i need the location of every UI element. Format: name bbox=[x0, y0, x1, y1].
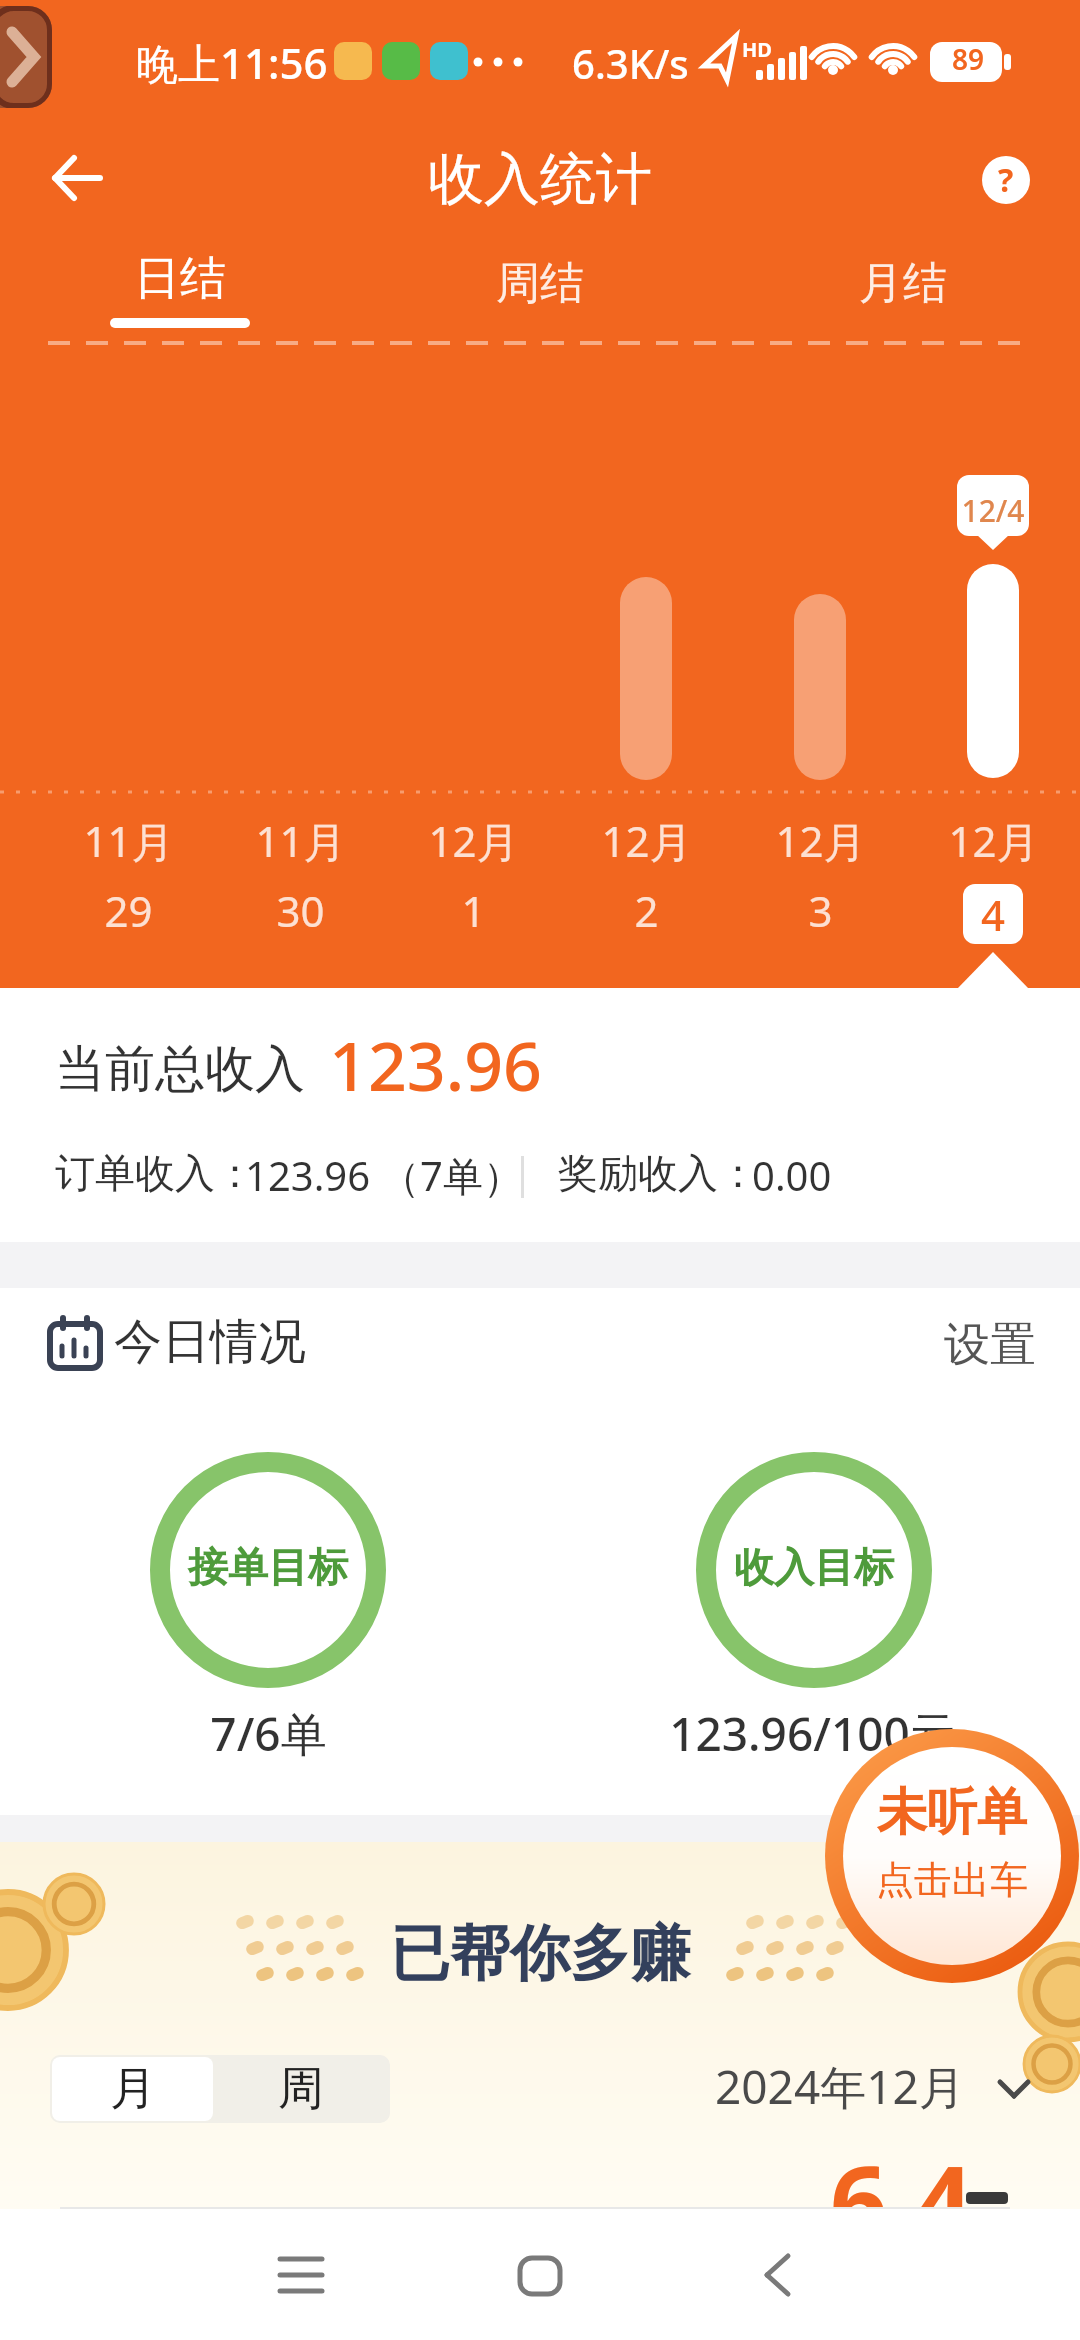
staticText: 12月 bbox=[601, 812, 692, 869]
staticText: 今日情况 bbox=[114, 1312, 306, 1372]
button[interactable] bbox=[736, 2240, 820, 2310]
button[interactable]: 设置 bbox=[0, 0, 92, 58]
button[interactable]: 月 bbox=[52, 2057, 213, 2121]
staticText: 订单收入： bbox=[55, 1148, 255, 1198]
staticText: 月结 bbox=[859, 256, 947, 311]
staticText: 12月 bbox=[948, 812, 1039, 869]
staticText: 0.00 bbox=[752, 1148, 832, 1202]
staticText: 123.96 bbox=[329, 1018, 542, 1111]
button[interactable]: 日结 bbox=[110, 232, 250, 328]
staticText: 晚上11:56 bbox=[136, 34, 328, 91]
staticText: 4 bbox=[981, 886, 1006, 943]
staticText: 1 bbox=[461, 882, 486, 939]
staticText: 3 bbox=[808, 882, 833, 939]
staticText: 12月 bbox=[775, 812, 866, 869]
button[interactable]: 2024年12月 bbox=[710, 2050, 1040, 2126]
staticText: 29 bbox=[104, 882, 153, 939]
staticText: 2024年12月 bbox=[715, 2055, 965, 2118]
staticText: 已帮你多赚 bbox=[390, 1916, 690, 1992]
staticText: 月 bbox=[110, 2060, 156, 2118]
staticText: 收入统计 bbox=[428, 144, 652, 215]
staticText: 11月 bbox=[83, 812, 174, 869]
staticText: 89 bbox=[952, 40, 985, 78]
button[interactable]: ? bbox=[982, 156, 1030, 204]
staticText: 30 bbox=[276, 882, 325, 939]
staticText: 点击出车 bbox=[876, 1856, 1028, 1904]
staticText: 日结 bbox=[134, 250, 226, 308]
staticText: （7单） bbox=[380, 1148, 523, 1203]
staticText: 奖励收入： bbox=[558, 1148, 758, 1198]
staticText: 当前总收入 bbox=[55, 1038, 305, 1101]
staticText: 123.96/100元 bbox=[669, 1702, 956, 1765]
staticText: 7/6单 bbox=[210, 1702, 327, 1765]
button[interactable]: 未听单 bbox=[825, 1729, 1079, 1983]
button[interactable] bbox=[498, 2240, 582, 2310]
staticText: 周结 bbox=[496, 256, 584, 311]
staticText: 接单目标 bbox=[188, 1542, 348, 1592]
button[interactable]: 周结 bbox=[460, 250, 620, 314]
button[interactable]: 4 bbox=[963, 884, 1023, 944]
staticText: 123.96 bbox=[245, 1148, 371, 1202]
staticText: ? bbox=[998, 158, 1014, 202]
staticText: 12月 bbox=[428, 812, 519, 869]
button[interactable]: 周 bbox=[218, 2057, 383, 2121]
staticText: 12/4 bbox=[961, 490, 1025, 531]
staticText: 周 bbox=[278, 2060, 324, 2118]
staticText: 6.3K/s bbox=[572, 36, 689, 90]
button[interactable] bbox=[260, 2240, 344, 2310]
button[interactable]: 月结 bbox=[823, 250, 983, 314]
staticText: 11月 bbox=[255, 812, 346, 869]
staticText: 未听单 bbox=[877, 1781, 1027, 1844]
staticText: 收入目标 bbox=[734, 1542, 894, 1592]
staticText: 6.4 bbox=[830, 2132, 973, 2209]
staticText: HD bbox=[742, 36, 772, 63]
button[interactable] bbox=[52, 152, 104, 204]
staticText: 2 bbox=[634, 882, 659, 939]
